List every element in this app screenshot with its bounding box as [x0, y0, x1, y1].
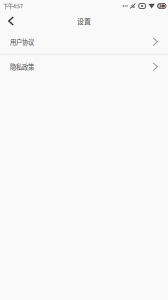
button[interactable]: 隐私政策 [0, 55, 168, 78]
staticText: 设置 [77, 16, 91, 26]
button[interactable]: Back [0, 12, 24, 30]
staticText: 隐私政策 [10, 62, 34, 71]
staticText: 用户协议 [10, 37, 34, 46]
staticText: 下午4:57 [3, 2, 23, 10]
button[interactable]: 用户协议 [0, 30, 168, 53]
